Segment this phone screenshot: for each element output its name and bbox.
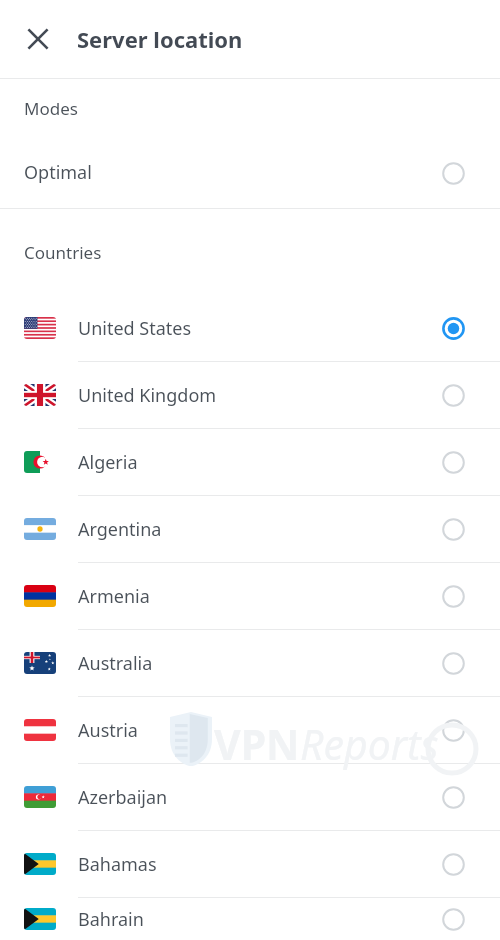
button[interactable]: Armenia: [0, 563, 500, 629]
button[interactable]: Australia: [0, 630, 500, 696]
staticText: Modes: [24, 97, 78, 120]
button[interactable]: Bahrain: [0, 898, 500, 940]
button[interactable]: Azerbaijan: [0, 764, 500, 830]
staticText: Server location: [77, 24, 243, 54]
button[interactable]: United Kingdom: [0, 362, 500, 428]
button[interactable]: Close: [15, 16, 61, 62]
staticText: Azerbaijan: [78, 785, 168, 810]
staticText: Argentina: [78, 517, 162, 542]
button[interactable]: Argentina: [0, 496, 500, 562]
button[interactable]: Austria: [0, 697, 500, 763]
staticText: VPN: [214, 716, 300, 772]
staticText: Reports: [300, 716, 439, 772]
staticText: Australia: [78, 651, 153, 676]
staticText: Austria: [78, 718, 138, 743]
button[interactable]: United States: [0, 295, 500, 361]
staticText: Armenia: [78, 584, 150, 609]
staticText: Optimal: [24, 160, 92, 185]
staticText: United Kingdom: [78, 383, 217, 408]
button[interactable]: Algeria: [0, 429, 500, 495]
staticText: Countries: [24, 241, 102, 264]
staticText: Bahrain: [78, 907, 144, 932]
button[interactable]: Optimal: [0, 137, 500, 208]
staticText: Bahamas: [78, 852, 157, 877]
button[interactable]: Bahamas: [0, 831, 500, 897]
staticText: United States: [78, 316, 192, 341]
staticText: Algeria: [78, 450, 138, 475]
